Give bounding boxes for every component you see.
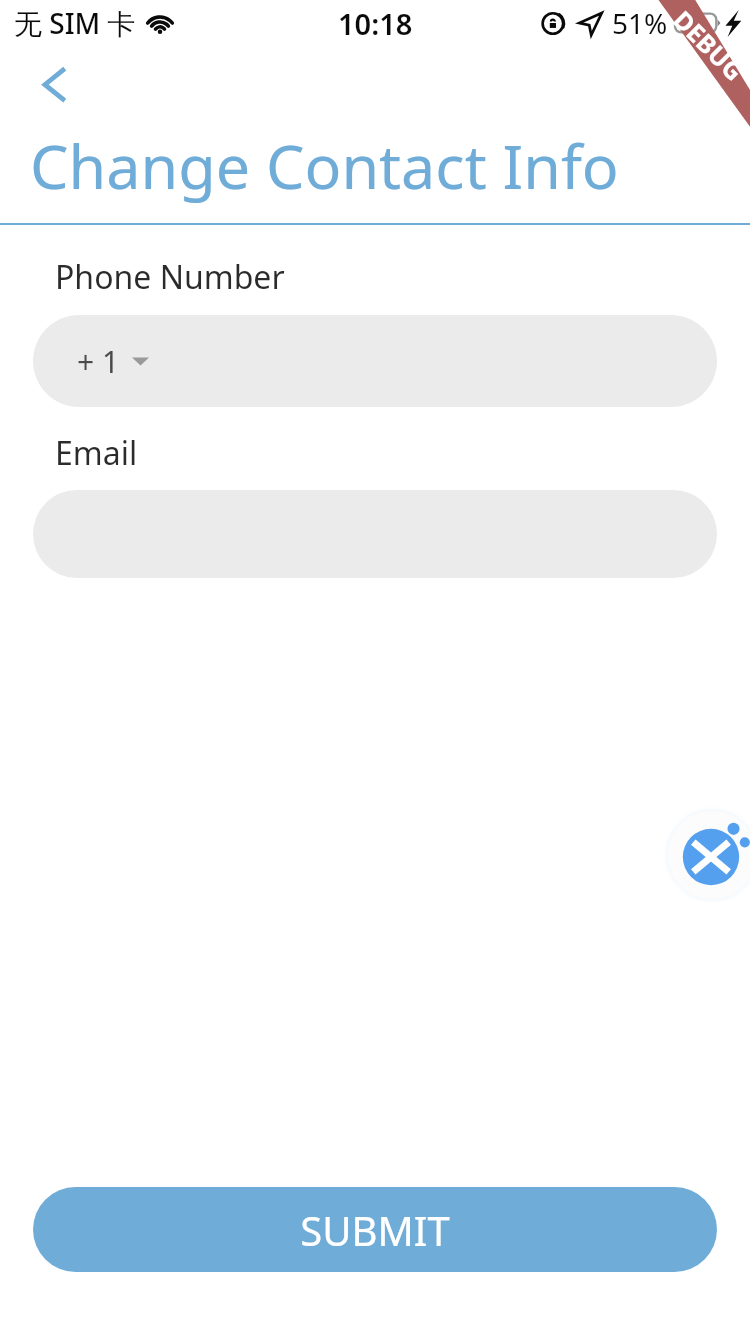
staticText: Change Contact Info xyxy=(30,124,619,207)
button[interactable]: Back xyxy=(22,58,84,116)
staticText: 10:18 xyxy=(338,4,413,43)
button[interactable]: + 1 xyxy=(33,315,717,407)
button[interactable]: Debug tools xyxy=(663,806,750,904)
staticText: DEBUG xyxy=(667,3,750,87)
staticText: + 1 xyxy=(77,341,120,382)
button[interactable]: SUBMIT xyxy=(33,1187,717,1272)
staticText: Email xyxy=(55,431,138,475)
button[interactable]: Email input xyxy=(33,490,717,578)
staticText: SUBMIT xyxy=(300,1203,450,1257)
staticText: 51% xyxy=(612,4,668,42)
staticText: Phone Number xyxy=(55,255,285,299)
staticText: 无 SIM 卡 xyxy=(14,4,136,42)
